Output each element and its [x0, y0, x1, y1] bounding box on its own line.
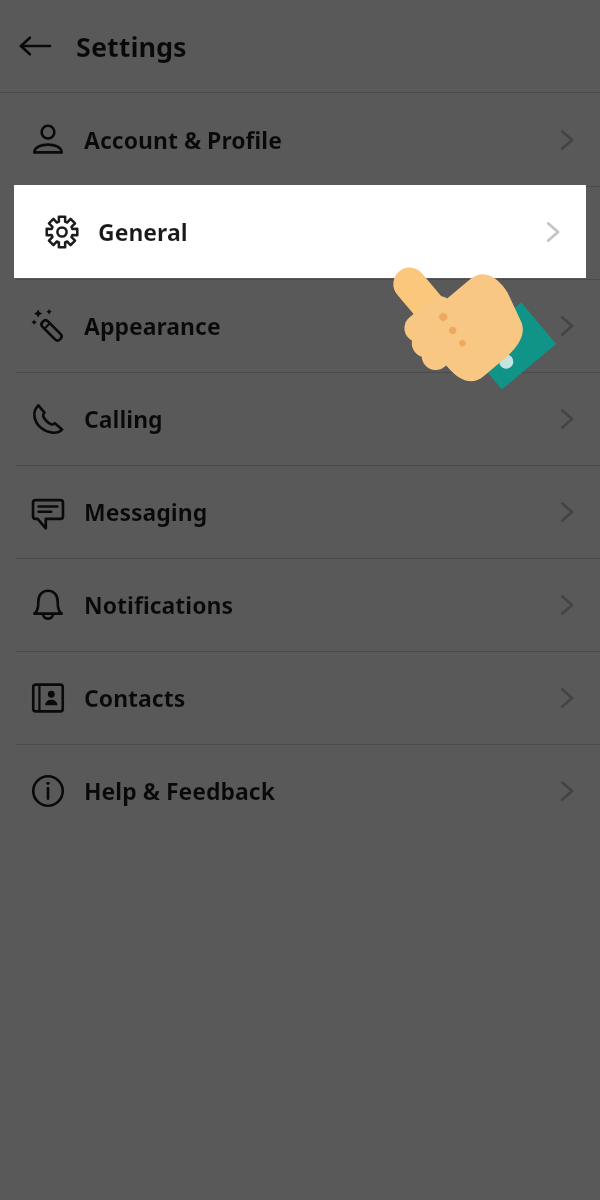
staticText: Settings: [76, 28, 187, 65]
staticText: Contacts: [84, 682, 186, 713]
staticText: Help & Feedback: [84, 775, 275, 806]
button[interactable]: Appearance: [0, 279, 600, 372]
button[interactable]: General: [0, 186, 600, 279]
staticText: General: [98, 216, 188, 247]
button[interactable]: Contacts: [0, 651, 600, 744]
staticText: General: [84, 217, 174, 248]
staticText: Messaging: [84, 496, 208, 527]
button[interactable]: Help & Feedback: [0, 744, 600, 837]
button[interactable]: General: [14, 185, 586, 278]
button[interactable]: Calling: [0, 372, 600, 465]
button[interactable]: Account & Profile: [0, 93, 600, 186]
staticText: Appearance: [84, 310, 221, 341]
staticText: Account & Profile: [84, 124, 282, 155]
button[interactable]: Back: [6, 17, 64, 75]
staticText: Notifications: [84, 589, 234, 620]
button[interactable]: Messaging: [0, 465, 600, 558]
other: Tap here: [400, 248, 536, 384]
button[interactable]: Notifications: [0, 558, 600, 651]
staticText: Calling: [84, 403, 163, 434]
